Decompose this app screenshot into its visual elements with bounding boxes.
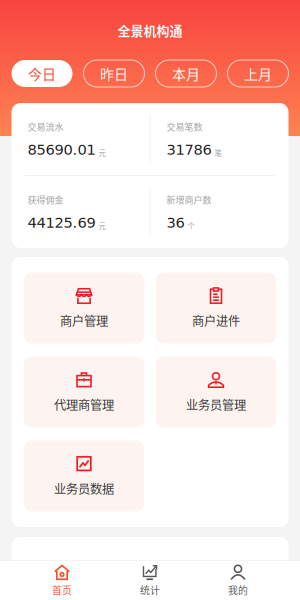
staticText: 笔: [214, 147, 221, 158]
button[interactable]: 我的: [194, 561, 282, 600]
button[interactable]: 统计: [106, 561, 194, 600]
staticText: 85690.01: [27, 141, 95, 158]
staticText: 新增商户数: [166, 193, 211, 206]
staticText: 个: [187, 220, 194, 231]
staticText: 31786: [166, 141, 211, 158]
button[interactable]: 上月: [227, 60, 288, 87]
staticText: 交易笔数: [166, 120, 202, 133]
button[interactable]: 商户进件: [156, 272, 276, 343]
staticText: 代理商管理: [54, 396, 114, 413]
staticText: 本月: [172, 63, 200, 84]
staticText: 今日: [28, 63, 56, 84]
button[interactable]: 业务员数据: [24, 440, 144, 511]
button[interactable]: 商户管理: [24, 272, 144, 343]
button[interactable]: 业务员管理: [156, 356, 276, 427]
staticText: 36: [166, 214, 184, 231]
button[interactable]: 代理商管理: [24, 356, 144, 427]
staticText: 首页: [52, 583, 72, 597]
button[interactable]: 今日: [11, 60, 72, 87]
staticText: 上月: [244, 63, 272, 84]
staticText: 昨日: [100, 63, 128, 84]
staticText: 获得佣金: [27, 193, 63, 206]
button[interactable]: 本月: [155, 60, 216, 87]
staticText: 44125.69: [27, 214, 95, 231]
staticText: 交易流水: [27, 120, 63, 133]
staticText: 元: [98, 147, 105, 158]
staticText: 业务员管理: [186, 396, 246, 413]
button[interactable]: 昨日: [83, 60, 144, 87]
staticText: 商户管理: [60, 312, 108, 329]
staticText: 全景机构通: [117, 21, 182, 39]
button[interactable]: 首页: [18, 561, 106, 600]
staticText: 元: [98, 220, 105, 231]
staticText: 统计: [140, 583, 160, 597]
staticText: 商户进件: [192, 312, 240, 329]
staticText: 业务员数据: [54, 480, 114, 497]
staticText: 我的: [228, 583, 248, 597]
